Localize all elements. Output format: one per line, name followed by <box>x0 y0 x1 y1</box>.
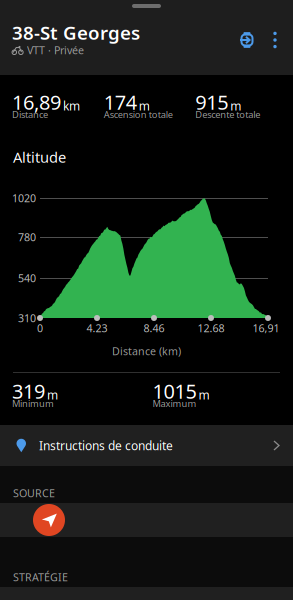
button[interactable]: More options <box>262 24 288 56</box>
staticText: STRATÉGIE <box>13 570 68 584</box>
button[interactable] <box>0 503 293 537</box>
staticText: 0 <box>37 321 43 335</box>
staticText: 780 <box>18 230 36 244</box>
staticText: Distance (km) <box>112 344 181 358</box>
staticText: m <box>230 98 241 114</box>
staticText: Distance <box>12 108 48 121</box>
staticText: Maximum <box>152 397 196 410</box>
staticText: VTT · Privée <box>27 43 84 57</box>
staticText: 1015 <box>152 378 196 404</box>
staticText: Altitude <box>13 147 66 167</box>
staticText: m <box>47 387 58 403</box>
staticText: Instructions de conduite <box>39 437 173 453</box>
button[interactable]: Instructions de conduite <box>0 425 293 466</box>
staticText: 8.46 <box>143 321 164 335</box>
staticText: Minimum <box>12 397 54 410</box>
staticText: 310 <box>18 311 36 325</box>
staticText: 4.23 <box>86 321 107 335</box>
staticText: SOURCE <box>13 486 55 500</box>
staticText: 12.68 <box>197 321 224 335</box>
staticText: 16,89 <box>12 89 61 115</box>
staticText: Ascension totale <box>104 108 173 121</box>
staticText: 174 <box>104 89 137 115</box>
staticText: 38-St Georges <box>12 20 140 45</box>
staticText: 319 <box>12 378 45 404</box>
staticText: 16,91 <box>252 321 279 335</box>
button[interactable]: Send to watch <box>232 24 262 56</box>
staticText: km <box>63 98 80 114</box>
staticText: 915 <box>195 89 228 115</box>
staticText: m <box>139 98 150 114</box>
staticText: Descente totale <box>195 108 260 121</box>
staticText: 540 <box>18 271 36 285</box>
staticText: m <box>198 387 209 403</box>
staticText: 1020 <box>12 191 36 205</box>
